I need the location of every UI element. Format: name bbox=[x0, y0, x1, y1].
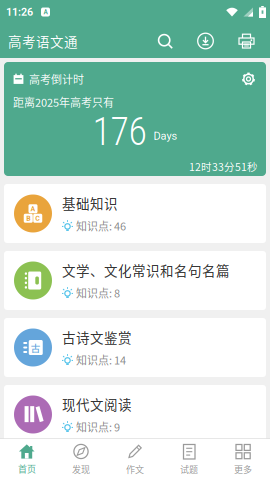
button[interactable]: 搜索 bbox=[145, 24, 185, 58]
staticText: 基础知识 bbox=[62, 193, 118, 213]
staticText: 高考倒计时 bbox=[29, 71, 84, 87]
staticText: 知识点: 9 bbox=[76, 419, 120, 435]
staticText: 作文 bbox=[126, 462, 144, 475]
staticText: 古诗文鉴赏 bbox=[62, 327, 132, 347]
button[interactable]: 作文 bbox=[108, 439, 162, 480]
staticText: 11:26 bbox=[6, 6, 33, 18]
button[interactable]: 打印 bbox=[226, 24, 267, 58]
staticText: 现代文阅读 bbox=[62, 394, 132, 414]
button[interactable]: 设置 bbox=[237, 71, 260, 86]
button[interactable]: 文学、文化常识和名句名篇 bbox=[4, 251, 266, 310]
staticText: 距离2025年高考只有 bbox=[13, 94, 114, 110]
staticText: A bbox=[30, 205, 35, 213]
staticText: 知识点: 8 bbox=[76, 285, 120, 301]
staticText: C bbox=[35, 214, 40, 222]
staticText: 文学、文化常识和名句名篇 bbox=[62, 260, 230, 280]
staticText: 古 bbox=[31, 341, 41, 354]
staticText: 176 bbox=[92, 110, 146, 154]
button[interactable]: 发现 bbox=[54, 439, 108, 480]
staticText: 知识点: 14 bbox=[76, 352, 126, 368]
button[interactable]: A bbox=[4, 184, 266, 243]
button[interactable]: 现代文阅读 bbox=[4, 385, 266, 444]
staticText: Days bbox=[153, 130, 177, 142]
button[interactable]: 首页 bbox=[0, 439, 54, 480]
button[interactable]: 更多 bbox=[216, 439, 270, 480]
staticText: 12时33分51秒 bbox=[189, 159, 258, 174]
staticText: 首页 bbox=[18, 462, 36, 475]
staticText: 更多 bbox=[234, 462, 252, 475]
staticText: A bbox=[43, 8, 47, 16]
staticText: 试题 bbox=[180, 462, 198, 475]
staticText: 发现 bbox=[72, 462, 90, 475]
button[interactable]: 试题 bbox=[162, 439, 216, 480]
staticText: 高考语文通 bbox=[8, 31, 78, 51]
button[interactable]: 古 bbox=[4, 318, 266, 377]
button[interactable]: 下载 bbox=[185, 24, 226, 57]
staticText: B bbox=[26, 214, 30, 222]
staticText: 知识点: 46 bbox=[76, 218, 126, 234]
